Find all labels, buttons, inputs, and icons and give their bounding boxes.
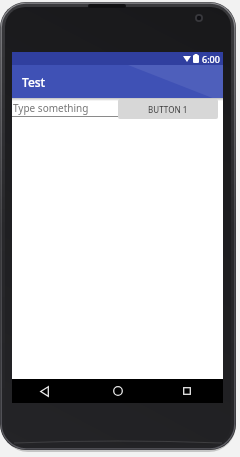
button[interactable] (25, 379, 64, 403)
button[interactable]: BUTTON 1 (118, 99, 218, 119)
staticText: Test (22, 74, 46, 90)
staticText: 6:00 (202, 53, 220, 65)
button[interactable] (167, 379, 206, 403)
staticText: BUTTON 1 (148, 104, 188, 115)
button[interactable]: Type something (12, 99, 118, 117)
button[interactable] (98, 379, 137, 403)
staticText: Type something (13, 101, 89, 115)
